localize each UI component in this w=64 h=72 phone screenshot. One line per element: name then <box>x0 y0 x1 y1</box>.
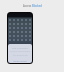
staticText: by your administrator <box>10 50 31 53</box>
staticText: Blocked <box>32 4 42 8</box>
staticText: Try another site <box>13 54 28 57</box>
staticText: Access <box>23 4 32 8</box>
staticText: LEARN MORE <box>13 60 27 63</box>
staticText: Site is blocked <box>12 46 28 49</box>
